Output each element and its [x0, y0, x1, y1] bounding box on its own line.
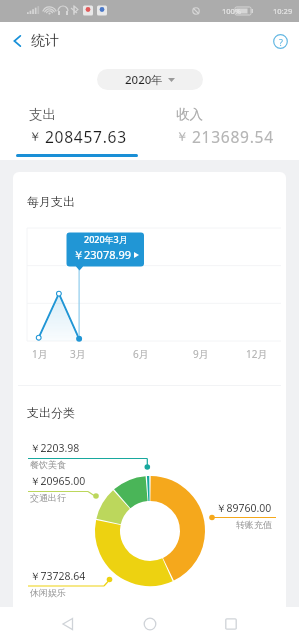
staticText: 10:29	[273, 6, 293, 16]
button[interactable]: 支出	[29, 106, 127, 147]
button[interactable]: Home	[136, 610, 164, 638]
staticText: 3月	[70, 347, 86, 361]
staticText: ￥89760.00	[216, 501, 272, 515]
staticText: 12月	[246, 347, 268, 361]
staticText: 每月支出	[27, 194, 75, 209]
staticText: 2020年3月	[84, 233, 128, 245]
staticText: 支出分类	[27, 405, 75, 420]
staticText: ￥	[29, 129, 42, 145]
staticText: ￥2203.98	[30, 441, 80, 455]
button[interactable]: Recents	[217, 610, 245, 638]
staticText: ￥23078.99	[73, 247, 131, 262]
staticText: 2020年	[125, 72, 163, 88]
staticText: 休闲娱乐	[30, 587, 66, 598]
button[interactable]: Help	[273, 34, 288, 49]
staticText: ?	[279, 36, 283, 48]
staticText: 208457.63	[45, 126, 127, 147]
staticText: 收入	[176, 106, 203, 123]
staticText: 统计	[31, 32, 59, 50]
staticText: 餐饮美食	[30, 459, 66, 470]
staticText: 转账充值	[236, 519, 272, 530]
other: Back	[11, 34, 23, 48]
staticText: 1月	[32, 347, 48, 361]
staticText: ￥	[176, 129, 189, 145]
staticText: ￥73728.64	[30, 569, 86, 583]
button[interactable]: 2020年	[97, 69, 203, 90]
staticText: 100%	[222, 6, 242, 16]
staticText: 6月	[133, 347, 149, 361]
button[interactable]: 收入	[176, 106, 274, 147]
staticText: ￥20965.00	[30, 474, 86, 488]
staticText: 支出	[29, 106, 56, 123]
button[interactable]: Back	[54, 610, 82, 638]
staticText: 9月	[193, 347, 209, 361]
staticText: 213689.54	[192, 126, 274, 147]
staticText: 交通出行	[30, 492, 66, 503]
button[interactable]: Back	[0, 22, 299, 60]
